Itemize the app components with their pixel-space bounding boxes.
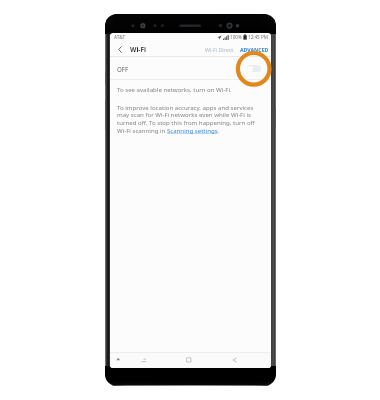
staticText: Wi-Fi Direct	[205, 46, 234, 53]
staticText: 12:45 PM	[248, 34, 268, 40]
button[interactable]: Home	[184, 355, 194, 365]
staticText: 100%	[230, 34, 242, 40]
staticText: OFF	[117, 65, 129, 73]
button[interactable]: Wi-Fi Direct	[204, 46, 235, 53]
staticText: Wi-Fi	[130, 45, 147, 54]
button[interactable]: Back	[230, 355, 240, 365]
button[interactable]: OFF	[110, 57, 271, 80]
button[interactable]: Hide keyboard	[114, 355, 124, 365]
button[interactable]: ADVANCED	[240, 46, 271, 53]
staticText: AT&T	[114, 34, 126, 41]
button[interactable]: Recent apps	[139, 355, 149, 365]
staticText: To improve location accuracy, apps and s…	[117, 103, 258, 135]
button[interactable]: Back	[111, 41, 128, 57]
staticText: To see available networks, turn on Wi-Fi…	[117, 85, 232, 93]
staticText: ADVANCED	[240, 46, 269, 53]
